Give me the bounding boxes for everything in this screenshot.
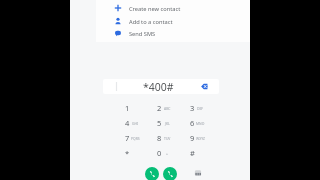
- staticText: Send SMS: [129, 30, 156, 38]
- button[interactable]: Create new contact: [114, 2, 240, 14]
- button[interactable]: 7: [113, 130, 145, 145]
- staticText: MNO: [196, 121, 205, 126]
- button[interactable]: #: [178, 145, 210, 160]
- staticText: WXYZ: [196, 136, 205, 141]
- staticText: *: [125, 148, 130, 158]
- button[interactable]: Send SMS: [114, 27, 240, 39]
- staticText: 0: [157, 148, 162, 158]
- button[interactable]: *: [113, 145, 145, 160]
- staticText: *400#: [143, 80, 174, 94]
- staticText: 1: [125, 103, 130, 113]
- button[interactable]: 3: [178, 100, 210, 115]
- staticText: JKL: [165, 121, 170, 126]
- staticText: 4: [125, 118, 130, 128]
- staticText: PQRS: [131, 136, 140, 141]
- staticText: 8: [157, 133, 162, 143]
- staticText: DEF: [197, 106, 204, 111]
- staticText: 5: [157, 118, 162, 128]
- staticText: Create new contact: [129, 5, 181, 13]
- staticText: 7: [125, 133, 130, 143]
- button[interactable]: 0: [145, 145, 177, 160]
- staticText: +: [166, 151, 168, 156]
- staticText: 3: [190, 103, 195, 113]
- button[interactable]: Call SIM 1: [145, 167, 159, 180]
- button[interactable]: Call SIM 2: [163, 167, 177, 180]
- button[interactable]: 4: [113, 115, 145, 130]
- staticText: 6: [190, 118, 195, 128]
- button[interactable]: *400#: [103, 79, 219, 94]
- staticText: 9: [190, 133, 195, 143]
- staticText: TUV: [164, 136, 171, 141]
- button[interactable]: Add to a contact: [114, 15, 240, 27]
- button[interactable]: 9: [178, 130, 210, 145]
- staticText: ABC: [164, 106, 171, 111]
- staticText: 2: [157, 103, 162, 113]
- button[interactable]: 1: [113, 100, 145, 115]
- button[interactable]: 8: [145, 130, 177, 145]
- button[interactable]: 2: [145, 100, 177, 115]
- button[interactable]: Hide dialpad: [192, 167, 204, 179]
- button[interactable]: 6: [178, 115, 210, 130]
- staticText: GHI: [132, 121, 139, 126]
- staticText: Add to a contact: [129, 18, 173, 26]
- button[interactable]: 5: [145, 115, 177, 130]
- staticText: #: [190, 148, 195, 158]
- button[interactable]: Backspace: [201, 83, 208, 90]
